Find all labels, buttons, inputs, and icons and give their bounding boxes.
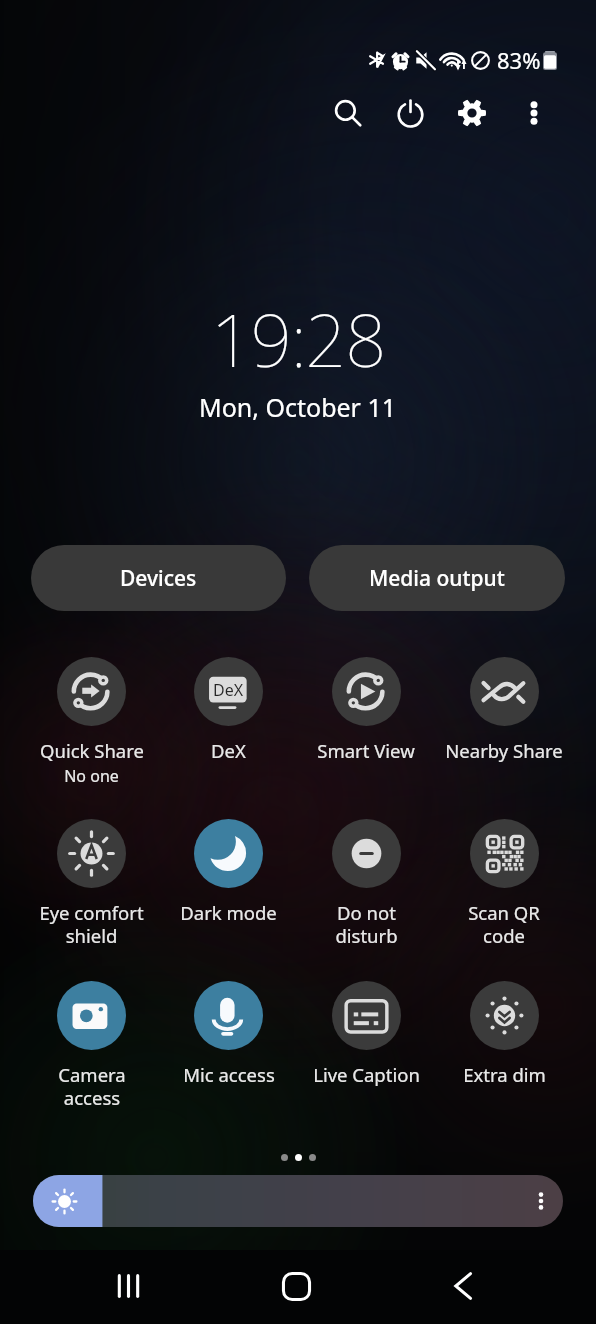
- button[interactable]: Smart View: [297, 657, 435, 819]
- button[interactable]: Nearby Share: [435, 657, 573, 819]
- button[interactable]: Mic access: [160, 981, 297, 1143]
- button[interactable]: Search: [317, 85, 379, 141]
- staticText: Eye comfort shield: [39, 900, 144, 948]
- button[interactable]: Devices: [31, 545, 286, 611]
- button[interactable]: Power: [379, 85, 441, 141]
- button[interactable]: Home: [255, 1249, 337, 1323]
- button[interactable]: Dark mode: [160, 819, 297, 981]
- button[interactable]: Scan QR code: [435, 819, 573, 981]
- staticText: Devices: [120, 564, 197, 593]
- button[interactable]: Recents: [87, 1249, 169, 1323]
- button[interactable]: Extra dim: [435, 981, 573, 1143]
- button[interactable]: Settings: [441, 85, 503, 141]
- staticText: Dark mode: [180, 900, 277, 925]
- staticText: Live Caption: [313, 1062, 420, 1087]
- button[interactable]: Eye comfort shield: [23, 819, 160, 981]
- staticText: Do not disturb: [335, 900, 398, 948]
- staticText: Quick Share: [40, 738, 144, 763]
- button[interactable]: More options: [503, 85, 565, 141]
- button[interactable]: Camera access: [23, 981, 160, 1143]
- staticText: Scan QR code: [468, 900, 540, 948]
- button[interactable]: [33, 1175, 563, 1227]
- staticText: Camera access: [58, 1062, 126, 1110]
- staticText: Extra dim: [463, 1062, 546, 1087]
- button[interactable]: Do not disturb: [297, 819, 435, 981]
- staticText: 19:28: [211, 290, 386, 388]
- staticText: Smart View: [317, 738, 415, 763]
- button[interactable]: DeX: [160, 657, 297, 819]
- staticText: DeX: [211, 738, 246, 763]
- staticText: Media output: [369, 564, 505, 593]
- staticText: 83%: [497, 45, 541, 75]
- staticText: Mon, October 11: [199, 390, 397, 424]
- staticText: No one: [64, 765, 119, 787]
- staticText: Nearby Share: [445, 738, 563, 763]
- button[interactable]: Quick Share: [23, 657, 160, 819]
- staticText: DeX: [213, 679, 244, 701]
- button[interactable]: Media output: [309, 545, 565, 611]
- button[interactable]: Live Caption: [297, 981, 435, 1143]
- button[interactable]: Back: [422, 1249, 504, 1323]
- staticText: Mic access: [183, 1062, 275, 1087]
